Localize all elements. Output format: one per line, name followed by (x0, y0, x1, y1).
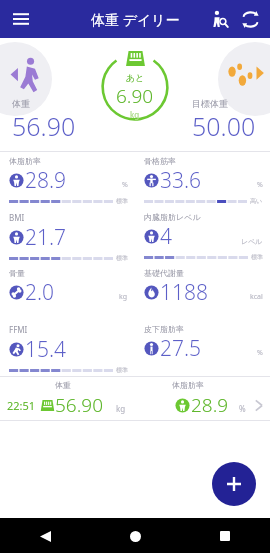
staticText: 骨格筋率 (144, 156, 176, 166)
staticText: FFMI (9, 324, 28, 335)
button[interactable]: 内臓脂肪レベル (135, 208, 270, 264)
staticText: 体脂肪率 (9, 156, 41, 166)
staticText: % (122, 180, 128, 190)
button[interactable]: 基礎代謝量 (135, 264, 270, 320)
staticText: 4 (160, 222, 172, 251)
staticText: あと (126, 72, 145, 83)
staticText: 標準 (116, 254, 128, 262)
button[interactable]: Sync (235, 4, 265, 34)
button[interactable]: 骨量 (0, 264, 135, 320)
staticText: 56.90 (12, 109, 76, 143)
button[interactable]: Menu (5, 3, 37, 35)
button[interactable]: 皮下脂肪率 (135, 320, 270, 376)
staticText: kcal (250, 292, 263, 302)
button[interactable]: BMI (0, 208, 135, 264)
staticText: 28.9 (191, 392, 229, 418)
staticText: 目標体重 (192, 98, 228, 109)
staticText: 33.6 (160, 166, 202, 195)
staticText: kg (130, 109, 140, 120)
button[interactable]: 骨格筋率 (135, 152, 270, 208)
staticText: 皮下脂肪率 (144, 324, 184, 334)
staticText: % (239, 403, 246, 414)
staticText: 内臓脂肪レベル (144, 212, 201, 222)
button[interactable]: あと (93, 45, 177, 129)
button[interactable]: Home (122, 523, 148, 549)
button[interactable]: FFMI (0, 320, 135, 376)
staticText: レベル (241, 237, 263, 246)
staticText: 2.0 (25, 278, 55, 307)
button[interactable]: Next day (218, 42, 270, 116)
staticText: % (257, 180, 263, 190)
button[interactable]: Back (32, 523, 58, 549)
staticText: 標準 (116, 197, 128, 205)
staticText: 28.9 (25, 166, 67, 195)
button[interactable]: Search person (205, 4, 235, 34)
staticText: 体重 (12, 98, 30, 109)
staticText: 標準 (251, 253, 263, 261)
button[interactable]: Recent apps (212, 523, 238, 549)
staticText: 50.00 (192, 109, 256, 143)
staticText: 体重 デイリー (91, 10, 180, 29)
staticText: 6.90 (116, 83, 154, 109)
button[interactable]: Add record (212, 462, 256, 506)
staticText: kg (119, 292, 128, 302)
staticText: 高い (250, 197, 263, 205)
staticText: 標準 (116, 366, 128, 374)
staticText: 体重 (55, 380, 71, 390)
staticText: 22:51 (7, 398, 36, 413)
button[interactable]: Previous day (0, 42, 52, 116)
staticText: 体脂肪率 (172, 380, 204, 390)
staticText: 骨量 (9, 268, 25, 278)
staticText: kg (116, 403, 126, 414)
staticText: 1188 (160, 278, 208, 307)
staticText: 27.5 (160, 334, 202, 363)
staticText: % (257, 348, 263, 358)
staticText: 基礎代謝量 (144, 268, 184, 278)
button[interactable]: 22:51 (0, 390, 270, 420)
staticText: BMI (9, 212, 25, 223)
staticText: 56.90 (55, 392, 104, 418)
staticText: 15.4 (25, 335, 67, 364)
button[interactable]: 体脂肪率 (0, 152, 135, 208)
staticText: 21.7 (25, 223, 67, 252)
